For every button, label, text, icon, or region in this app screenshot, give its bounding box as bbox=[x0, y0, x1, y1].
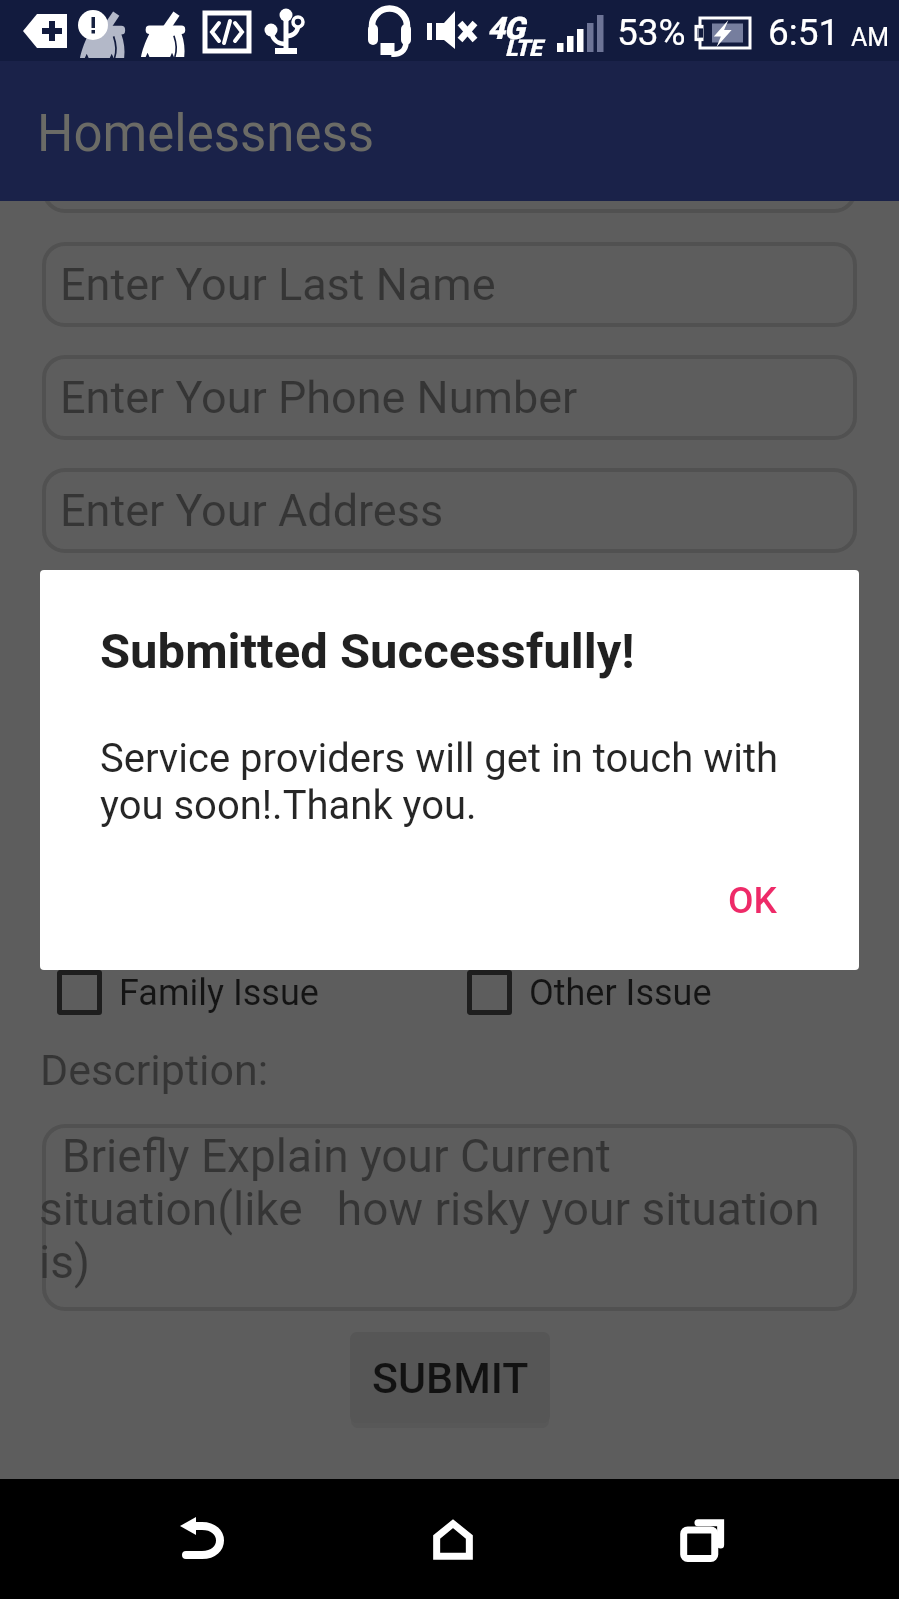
button[interactable]: Other Issue bbox=[467, 970, 712, 1015]
staticText: Briefly Explain your Current situation(l… bbox=[39, 1130, 834, 1289]
staticText: Family Issue bbox=[119, 972, 319, 1014]
staticText: AM bbox=[851, 23, 890, 52]
staticText: 53% bbox=[617, 11, 686, 54]
button[interactable] bbox=[42, 1124, 857, 1311]
button[interactable]: Enter Your Last Name bbox=[42, 242, 857, 327]
staticText: Enter Your Address bbox=[60, 484, 444, 537]
staticText: Enter Your Last Name bbox=[60, 258, 496, 311]
staticText: Submitted Successfully! bbox=[100, 623, 635, 680]
button[interactable]: Back bbox=[146, 1485, 256, 1595]
button[interactable]: Recent apps bbox=[648, 1485, 758, 1595]
button[interactable] bbox=[42, 130, 857, 213]
staticText: Description: bbox=[40, 1045, 269, 1095]
button[interactable]: Enter Your Address bbox=[42, 468, 857, 553]
staticText: 6:51 bbox=[768, 11, 840, 54]
button[interactable]: OK bbox=[704, 863, 801, 938]
staticText: 4G bbox=[487, 10, 524, 46]
button[interactable] bbox=[42, 581, 857, 666]
staticText: Homelessness bbox=[37, 104, 375, 164]
staticText: OK bbox=[728, 879, 777, 922]
staticText: SUBMIT bbox=[372, 1353, 529, 1403]
button[interactable]: Home bbox=[398, 1485, 508, 1595]
button[interactable]: Enter Your Phone Number bbox=[42, 355, 857, 440]
staticText: LTE bbox=[505, 35, 542, 62]
staticText: Service providers will get in touch with… bbox=[100, 735, 800, 829]
staticText: Other Issue bbox=[529, 972, 712, 1014]
button[interactable]: SUBMIT bbox=[350, 1332, 550, 1423]
button[interactable] bbox=[42, 694, 857, 779]
button[interactable]: Family Issue bbox=[57, 970, 319, 1015]
button[interactable] bbox=[42, 807, 857, 892]
staticText: Enter Your Phone Number bbox=[60, 371, 578, 424]
